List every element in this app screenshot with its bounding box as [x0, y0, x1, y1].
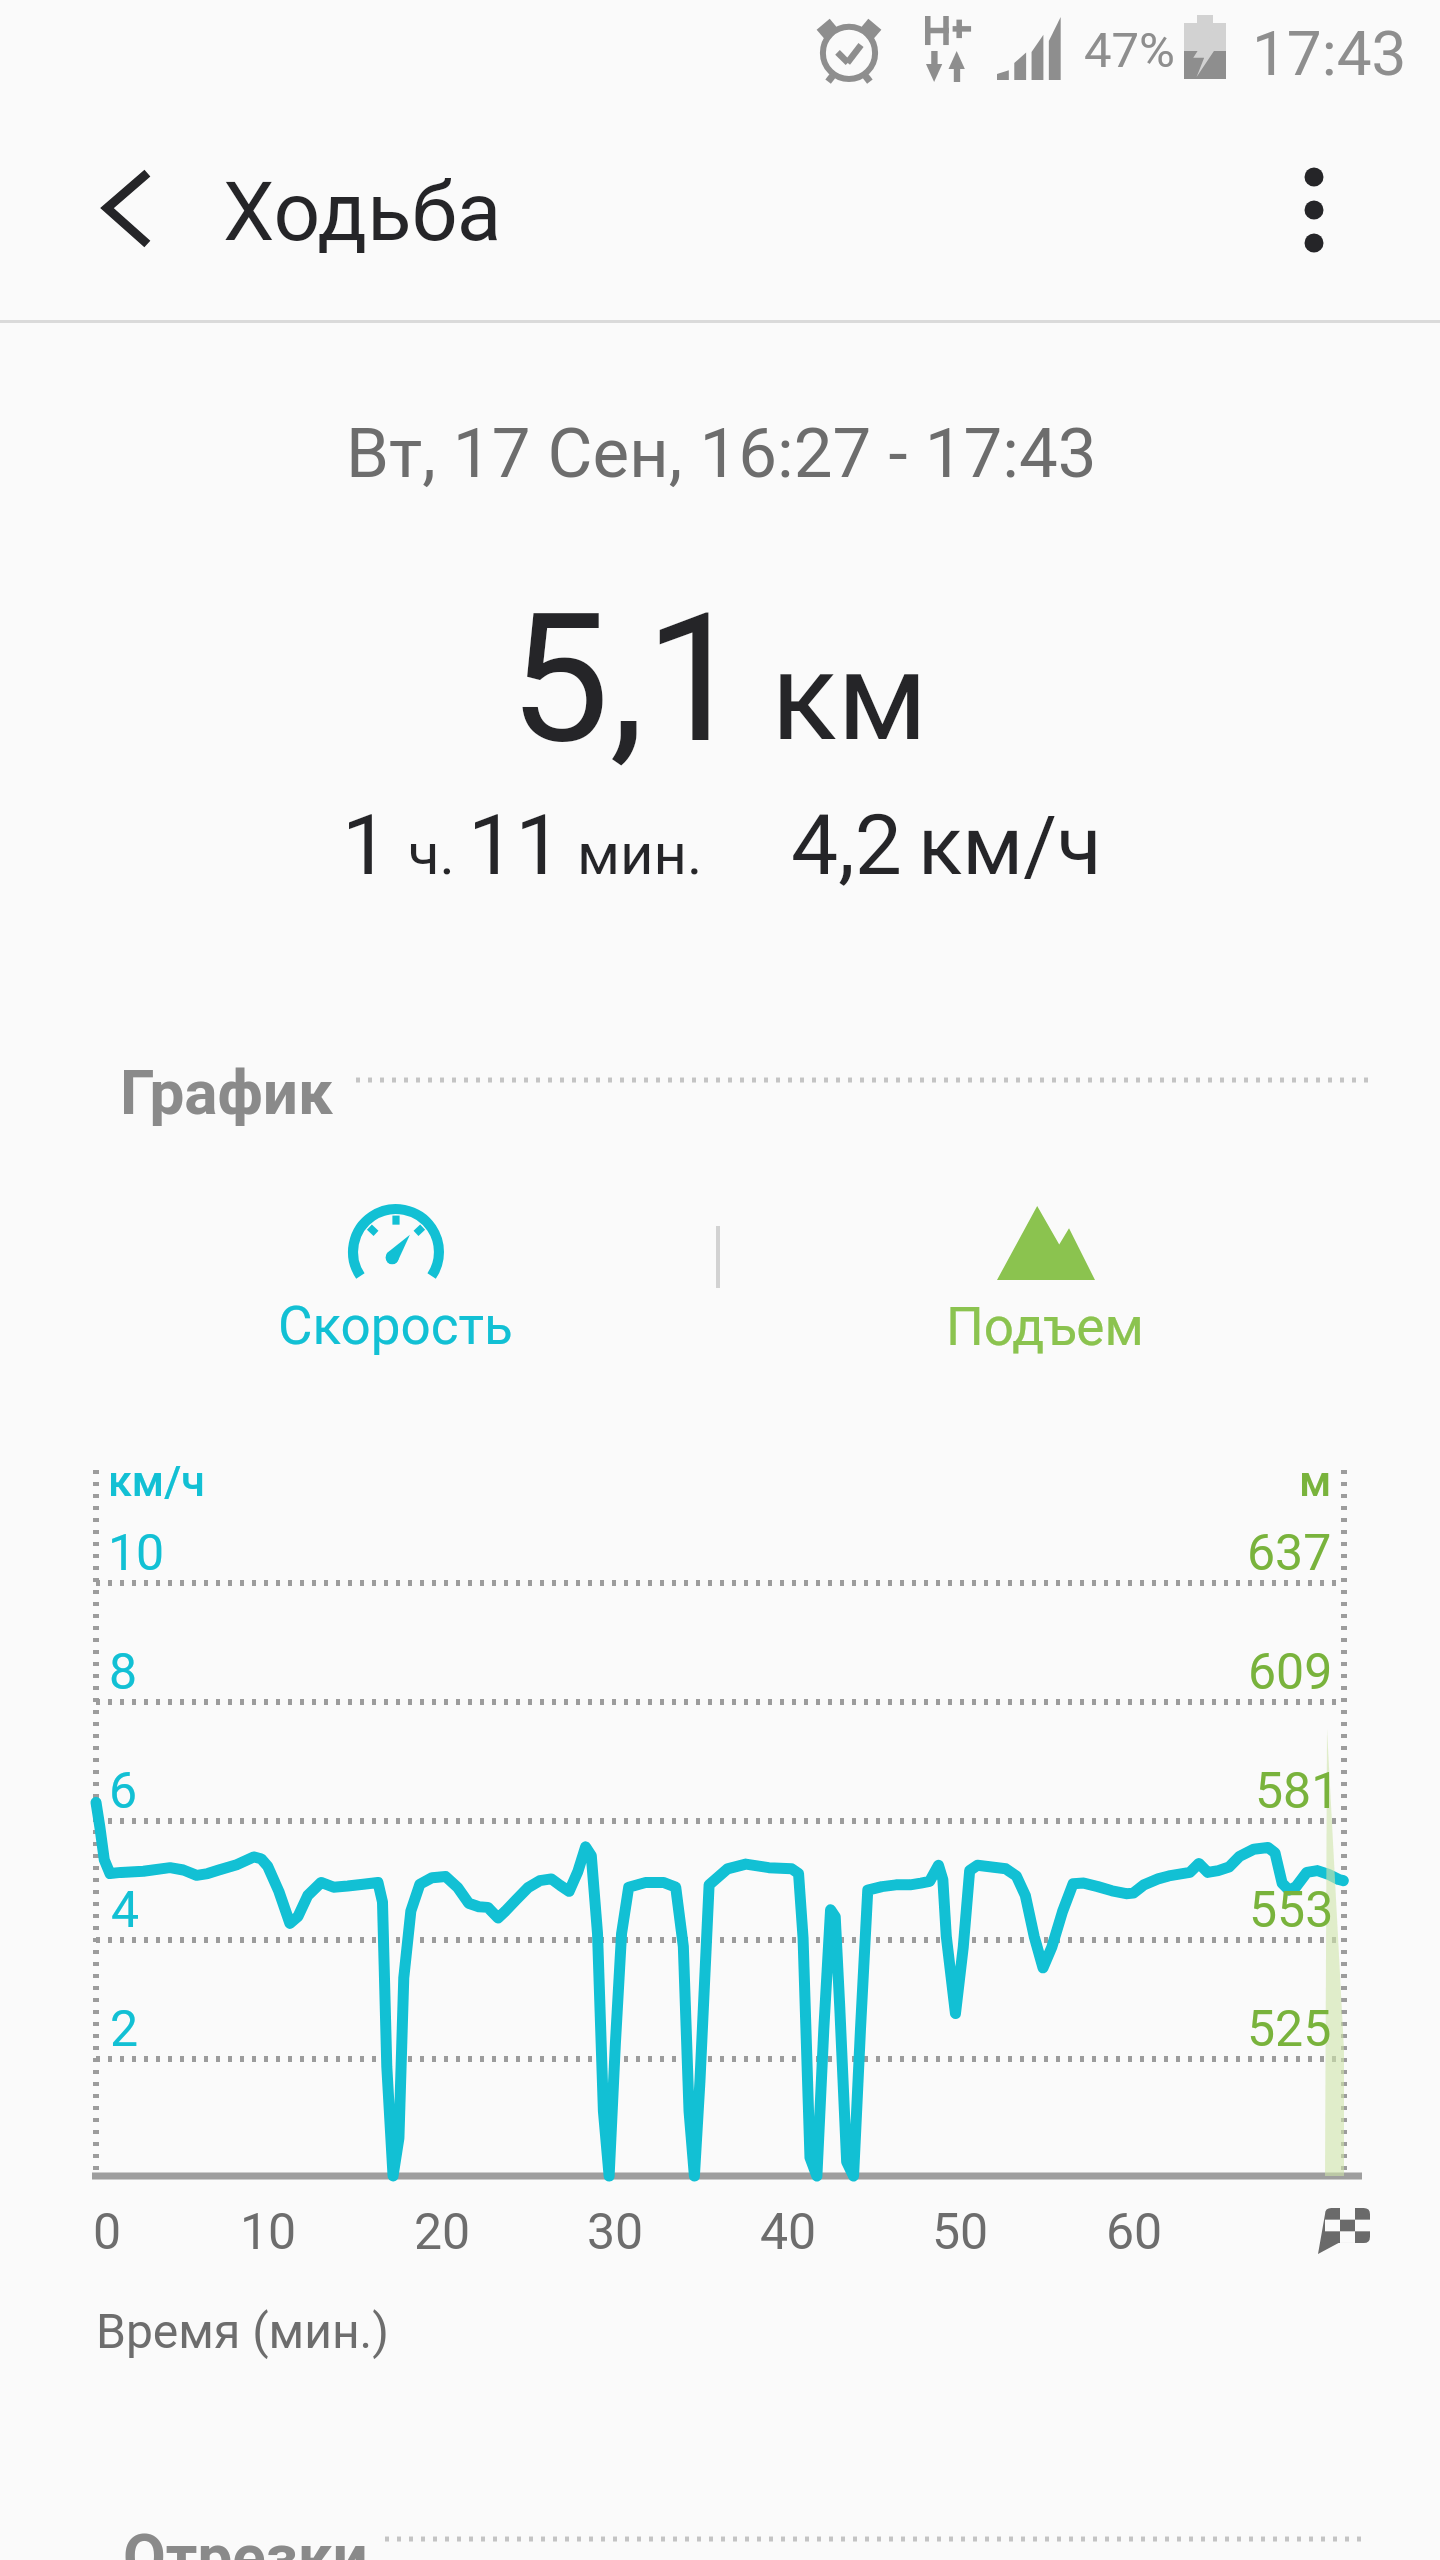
staticText: Скорость — [278, 1295, 513, 1357]
staticText: ч. — [408, 820, 455, 888]
staticText: км/ч — [108, 1456, 205, 1506]
button[interactable]: More options — [1234, 130, 1394, 290]
staticText: Отрезки — [123, 2520, 368, 2560]
button[interactable]: Back — [46, 130, 206, 290]
staticText: 525 — [1247, 2000, 1332, 2059]
staticText: Ходьба — [223, 164, 502, 260]
staticText: 609 — [1248, 1643, 1333, 1702]
staticText: 553 — [1249, 1881, 1334, 1940]
button[interactable]: Скорость — [240, 1182, 552, 1368]
staticText: км/ч — [918, 798, 1102, 894]
staticText: км — [771, 626, 928, 769]
staticText: 637 — [1247, 1524, 1332, 1583]
staticText: 581 — [1255, 1762, 1340, 1821]
staticText: 4,2 — [791, 796, 902, 894]
staticText: График — [120, 1056, 334, 1129]
staticText: 5,1 — [509, 574, 746, 784]
staticText: 2 — [110, 2000, 139, 2059]
staticText: 60 — [1106, 2203, 1163, 2262]
staticText: 40 — [760, 2203, 817, 2262]
staticText: м — [1299, 1456, 1332, 1506]
staticText: 6 — [109, 1762, 138, 1821]
staticText: 47% — [1084, 22, 1175, 79]
staticText: 8 — [109, 1643, 138, 1702]
staticText: Время (мин.) — [96, 2303, 389, 2359]
staticText: Подъем — [946, 1296, 1144, 1358]
button[interactable]: Подъем — [890, 1182, 1202, 1368]
staticText: 20 — [414, 2203, 471, 2262]
staticText: 50 — [932, 2203, 989, 2262]
staticText: 1 — [342, 796, 390, 894]
staticText: мин. — [577, 820, 703, 888]
staticText: 10 — [108, 1524, 165, 1583]
staticText: Вт, 17 Сен, 16:27 - 17:43 — [346, 413, 1097, 494]
staticText: 0 — [93, 2203, 122, 2262]
staticText: 11 — [468, 796, 563, 894]
staticText: 17:43 — [1252, 17, 1407, 90]
staticText: 10 — [240, 2203, 297, 2262]
staticText: 4 — [111, 1881, 140, 1940]
staticText: 30 — [587, 2203, 644, 2262]
